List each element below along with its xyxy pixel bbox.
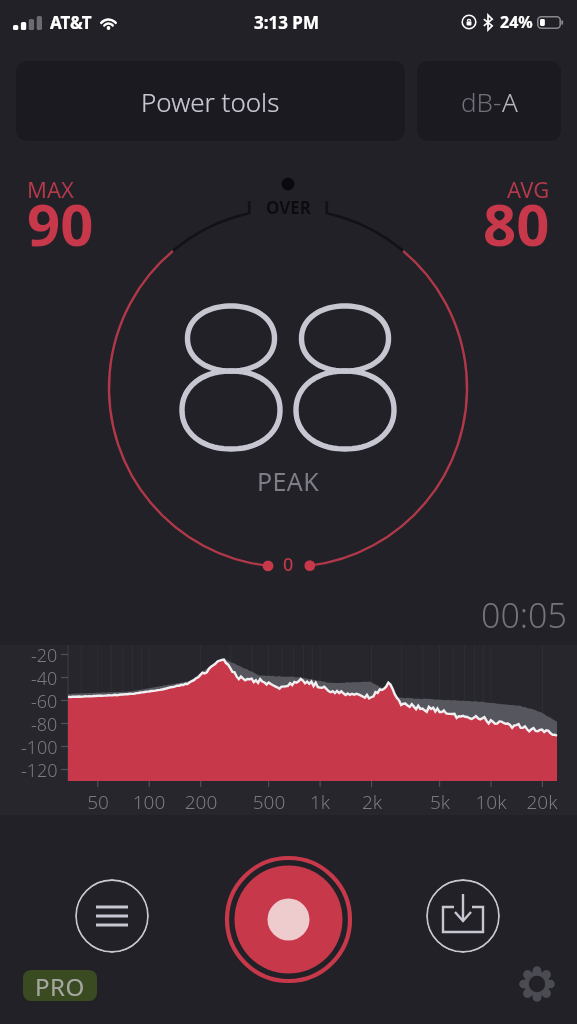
staticText: 100 [124, 789, 174, 815]
staticText: 10k [466, 789, 516, 815]
staticText: -120 [21, 758, 58, 781]
staticText: AT&T [50, 11, 92, 34]
button[interactable]: Settings [515, 962, 559, 1006]
staticText: 90 [27, 184, 94, 263]
staticText: 1k [295, 789, 345, 815]
staticText: A [502, 84, 518, 119]
staticText: -20 [31, 643, 58, 666]
staticText: 0 [283, 552, 294, 577]
staticText: 200 [176, 789, 226, 815]
button[interactable]: Record [222, 853, 355, 986]
staticText: MAX [27, 174, 74, 204]
staticText: -100 [21, 735, 58, 758]
button[interactable]: Power tools [16, 61, 405, 141]
staticText: Power tools [141, 84, 280, 119]
button[interactable]: PRO [23, 970, 97, 1001]
staticText: -80 [31, 712, 58, 735]
staticText: 2k [347, 789, 397, 815]
staticText: OVER [266, 196, 311, 219]
button[interactable]: Menu [75, 879, 149, 953]
button[interactable]: dB- [417, 61, 561, 141]
button[interactable]: Save [426, 879, 500, 953]
staticText: 20k [517, 789, 567, 815]
staticText: 00:05 [481, 592, 567, 638]
staticText: dB- [461, 84, 502, 119]
staticText: -40 [31, 666, 58, 689]
staticText: PRO [35, 970, 85, 1001]
staticText: 80 [483, 184, 550, 263]
staticText: 24% [500, 11, 533, 33]
staticText: 5k [415, 789, 465, 815]
staticText: PEAK [257, 464, 320, 498]
staticText: AVG [507, 174, 550, 204]
staticText: -60 [31, 689, 58, 712]
staticText: 50 [73, 789, 123, 815]
staticText: 3:13 PM [254, 11, 319, 34]
staticText: 500 [244, 789, 294, 815]
